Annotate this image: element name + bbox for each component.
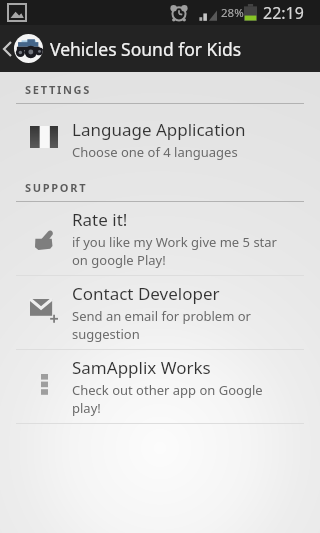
staticText: SETTINGS — [25, 82, 92, 97]
button[interactable]: Navigate up — [0, 25, 320, 72]
staticText: if you like my Work give me 5 star — [72, 233, 277, 251]
staticText: Choose one of 4 languages — [72, 143, 238, 161]
staticText: 28% — [221, 5, 244, 21]
button[interactable]: Language Application — [0, 118, 320, 161]
staticText: on google Play! — [72, 251, 166, 269]
button[interactable]: Rate it! — [0, 208, 320, 269]
staticText: Check out other app on Google — [72, 381, 263, 399]
staticText: Vehicles Sound for Kids — [50, 37, 242, 61]
staticText: play! — [72, 399, 101, 417]
staticText: Send an email for problem or — [72, 307, 251, 325]
staticText: Language Application — [72, 118, 246, 141]
staticText: Contact Developer — [72, 282, 220, 305]
staticText: SamApplix Works — [72, 356, 211, 379]
button[interactable]: SamApplix Works — [0, 356, 320, 417]
staticText: suggestion — [72, 325, 140, 343]
staticText: 22:19 — [263, 2, 304, 24]
staticText: SUPPORT — [25, 180, 88, 195]
staticText: Rate it! — [72, 208, 128, 231]
button[interactable]: Contact Developer — [0, 282, 320, 343]
